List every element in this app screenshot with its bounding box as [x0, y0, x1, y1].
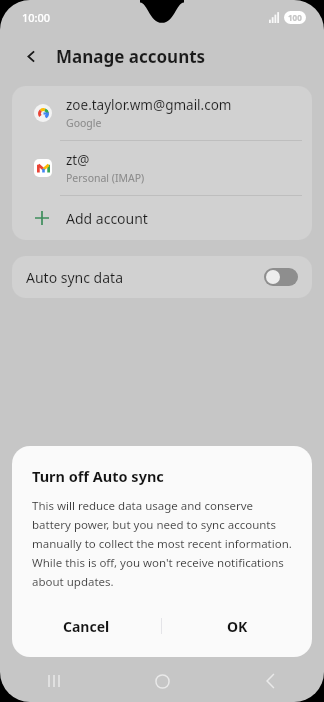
button[interactable]: Auto sync data toggle [264, 268, 298, 286]
staticText: Personal (IMAP) [66, 171, 145, 185]
staticText: zt@ [66, 151, 90, 169]
staticText: Auto sync data [26, 268, 123, 287]
staticText: Turn off Auto sync [32, 466, 164, 486]
button[interactable]: Recents [0, 660, 108, 702]
button[interactable]: Back [216, 660, 324, 702]
button[interactable]: Add account [12, 196, 312, 240]
staticText: Google [66, 116, 102, 130]
button[interactable]: Cancel [12, 605, 161, 647]
button[interactable]: zoe.taylor.wm@gmail.com [12, 86, 312, 140]
button[interactable]: Auto sync data [12, 256, 312, 298]
button[interactable]: OK [162, 605, 312, 647]
button[interactable]: Back [18, 43, 44, 69]
staticText: Manage accounts [56, 45, 206, 68]
staticText: OK [227, 617, 248, 636]
staticText: This will reduce data usage and conserve… [32, 498, 292, 589]
staticText: zoe.taylor.wm@gmail.com [66, 96, 232, 114]
staticText: Add account [66, 209, 148, 228]
staticText: 10:00 [22, 10, 51, 25]
button[interactable]: Home [108, 660, 216, 702]
button[interactable]: zt@ [12, 141, 312, 195]
staticText: 100 [288, 12, 302, 23]
staticText: Cancel [63, 617, 110, 636]
